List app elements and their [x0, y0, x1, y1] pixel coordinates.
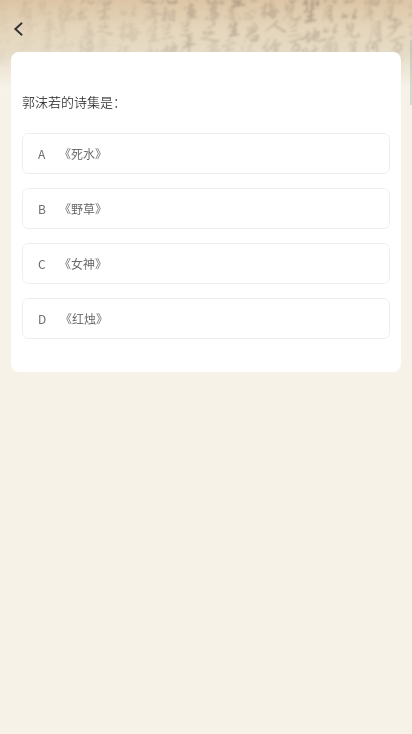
- button[interactable]: D: [22, 298, 390, 339]
- staticText: 《死水》: [59, 145, 108, 162]
- staticText: A: [38, 145, 46, 162]
- staticText: 《红烛》: [60, 310, 109, 327]
- staticText: 《女神》: [59, 255, 108, 272]
- staticText: C: [38, 255, 46, 272]
- staticText: 郭沫若的诗集是：: [22, 92, 127, 111]
- button[interactable]: A: [22, 133, 390, 174]
- staticText: B: [38, 200, 46, 217]
- button[interactable]: B: [22, 188, 390, 229]
- button[interactable]: C: [22, 243, 390, 284]
- staticText: D: [38, 310, 47, 327]
- staticText: 《野草》: [59, 200, 108, 217]
- button[interactable]: Back: [2, 11, 36, 45]
